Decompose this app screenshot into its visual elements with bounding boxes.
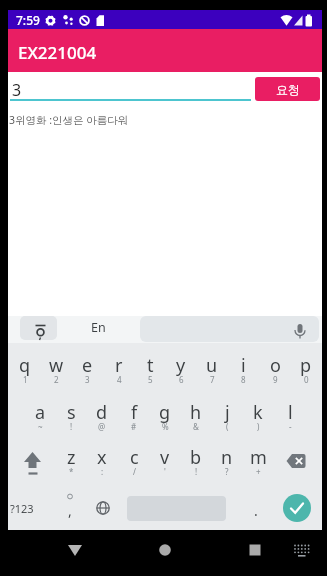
staticText: 0 [304,374,309,384]
staticText: n [221,445,233,470]
button[interactable] [20,316,57,340]
button[interactable]: e [70,350,104,380]
button[interactable]: j [210,397,244,427]
button[interactable]: t [133,350,167,380]
staticText: ! [195,466,198,476]
button[interactable]: k [241,397,275,427]
staticText: # [131,421,137,431]
staticText: r [115,353,123,378]
staticText: ' [164,466,166,476]
staticText: g [159,400,171,425]
staticText: ~ [38,421,43,431]
button[interactable]: x [85,442,119,472]
staticText: c [130,445,139,470]
button[interactable]: z [54,442,88,472]
button[interactable]: y [164,350,198,380]
button[interactable] [283,494,311,522]
staticText: 5 [148,374,153,384]
button[interactable]: u [195,350,229,380]
button[interactable]: r [102,350,136,380]
staticText: % [162,421,169,431]
staticText: ( [226,421,229,431]
button[interactable] [282,446,314,470]
staticText: o [270,353,281,378]
staticText: 요청 [276,82,300,97]
staticText: m [250,445,267,470]
staticText: EX221004 [18,41,97,62]
staticText: a [35,400,46,425]
staticText: b [190,445,202,470]
button[interactable] [240,538,270,562]
staticText: @ [98,421,106,431]
staticText: 1 [23,374,28,384]
staticText: j [225,400,230,425]
staticText: 3 [85,374,90,384]
staticText: 3 [12,79,22,97]
button[interactable]: . [249,498,263,520]
staticText: l [288,400,293,425]
staticText: / [133,466,136,476]
staticText: u [206,353,218,378]
button[interactable]: f [117,397,151,427]
staticText: 7 [210,374,215,384]
staticText: v [160,445,170,470]
button[interactable] [150,538,180,562]
button[interactable]: d [85,397,119,427]
button[interactable]: c [117,442,151,472]
staticText: En [91,319,106,336]
button[interactable]: , [63,498,77,520]
staticText: k [253,400,263,425]
staticText: 9 [273,374,278,384]
button[interactable] [96,501,111,516]
button[interactable]: a [23,397,57,427]
staticText: ! [70,421,73,431]
staticText: . [254,501,258,520]
button[interactable]: b [179,442,213,472]
staticText: z [67,445,76,470]
button[interactable]: 요청 [255,77,320,101]
staticText: ?123 [10,501,34,516]
button[interactable]: w [39,350,73,380]
staticText: * [69,466,74,476]
staticText: i [241,353,246,378]
staticText: 4 [117,374,122,384]
button[interactable]: p [289,350,323,380]
staticText: , [68,501,72,520]
staticText: f [131,400,138,425]
staticText: t [147,353,154,378]
staticText: w [49,353,64,378]
button[interactable]: h [179,397,213,427]
staticText: y [176,353,186,378]
button[interactable]: v [148,442,182,472]
staticText: p [300,353,312,378]
staticText: q [19,353,31,378]
button[interactable]: g [148,397,182,427]
staticText: ? [225,466,229,476]
staticText: x [97,445,107,470]
button[interactable]: ?123 [6,498,38,518]
staticText: 2 [54,374,59,384]
staticText: : [101,466,104,476]
button[interactable]: q [8,350,42,380]
staticText: + [256,466,261,476]
staticText: h [190,400,202,425]
staticText: & [193,421,199,431]
button[interactable] [60,538,90,562]
button[interactable]: o [258,350,292,380]
button[interactable]: s [54,397,88,427]
staticText: - [289,421,292,431]
button[interactable]: En [85,317,111,338]
staticText: s [67,400,76,425]
staticText: 7:59 [16,12,40,28]
button[interactable] [14,444,46,474]
button[interactable]: m [241,442,275,472]
button[interactable]: i [226,350,260,380]
staticText: 8 [241,374,246,384]
button[interactable]: l [273,397,307,427]
staticText: d [96,400,108,425]
staticText: e [82,353,93,378]
button[interactable] [290,538,316,562]
button[interactable]: n [210,442,244,472]
staticText: 3위영화 :인생은 아름다워 [9,113,129,127]
